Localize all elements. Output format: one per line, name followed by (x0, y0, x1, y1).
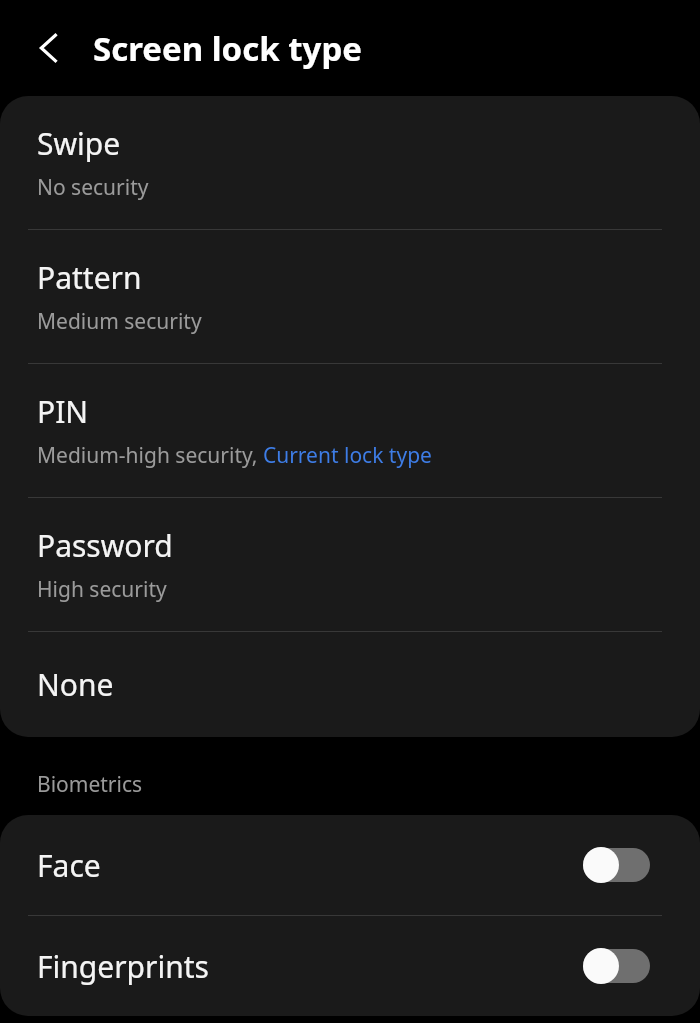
button[interactable]: Pattern (0, 230, 700, 363)
staticText: Biometrics (37, 770, 143, 799)
button[interactable]: Swipe (0, 96, 700, 229)
staticText: Screen lock type (93, 26, 362, 71)
button[interactable]: Face (0, 815, 700, 915)
staticText: Password (37, 525, 173, 566)
staticText: Fingerprints (37, 946, 583, 987)
staticText: PIN (37, 391, 89, 432)
staticText: Swipe (37, 123, 121, 164)
staticText: Medium security (37, 307, 202, 336)
staticText: Face (37, 845, 583, 886)
button[interactable]: Back (22, 21, 76, 75)
staticText: Medium-high security, Current lock type (37, 441, 432, 470)
button[interactable]: PIN (0, 364, 700, 497)
staticText: None (37, 664, 114, 705)
staticText: High security (37, 575, 167, 604)
staticText: No security (37, 173, 149, 202)
button[interactable]: Fingerprints (0, 916, 700, 1016)
button[interactable]: None (0, 632, 700, 737)
button[interactable]: Password (0, 498, 700, 631)
staticText: Pattern (37, 257, 142, 298)
